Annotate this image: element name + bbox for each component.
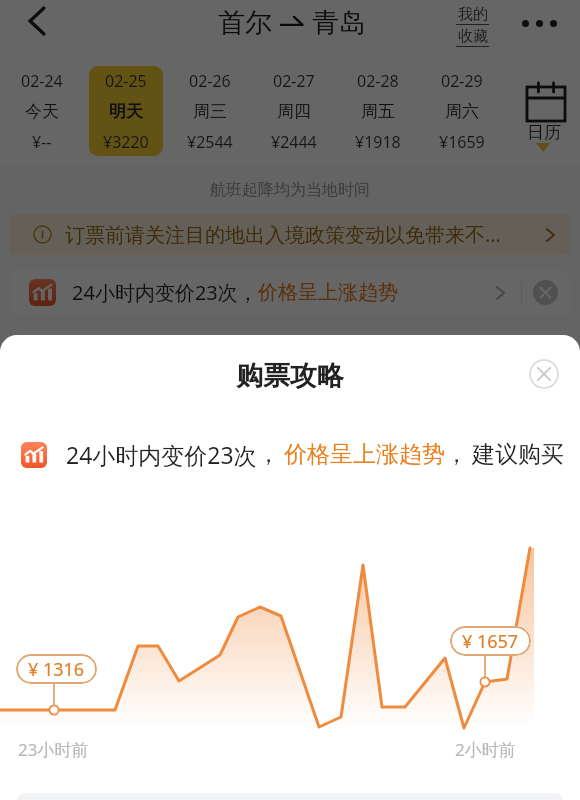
staticText: 周三: [193, 101, 227, 122]
button[interactable]: Dismiss tip: [533, 280, 558, 305]
staticText: ¥1659: [439, 131, 485, 153]
staticText: 购票攻略: [236, 359, 344, 393]
staticText: 收藏: [458, 27, 488, 46]
button[interactable]: 02-27: [257, 66, 331, 156]
staticText: 明天: [109, 101, 143, 122]
staticText: 24小时内变价23次，: [72, 279, 258, 306]
button[interactable]: Back: [13, 0, 61, 42]
button[interactable]: 02-28: [341, 66, 415, 156]
button[interactable]: More options: [516, 2, 562, 44]
staticText: 日历: [527, 122, 561, 143]
staticText: 02-26: [189, 70, 231, 92]
staticText: 2小时前: [455, 738, 516, 761]
staticText: 周五: [361, 101, 395, 122]
staticText: 23小时前: [18, 738, 89, 761]
staticText: 航班起降均为当地时间: [210, 180, 370, 200]
staticText: 订票前请关注目的地出入境政策变动以免带来不…: [65, 221, 540, 248]
staticText: 24小时内变价23次: [66, 439, 257, 470]
staticText: ，: [257, 440, 280, 469]
staticText: ¥--: [32, 131, 52, 153]
button[interactable]: 02-25: [89, 66, 163, 156]
staticText: 我的: [458, 5, 488, 24]
button[interactable]: 日历: [504, 57, 580, 165]
staticText: ¥1918: [355, 131, 401, 153]
staticText: ¥ 1657: [462, 629, 519, 654]
staticText: 02-24: [21, 70, 63, 92]
staticText: 价格呈上涨趋势: [258, 280, 398, 305]
button[interactable]: Close: [529, 359, 559, 389]
staticText: ¥2544: [187, 131, 233, 153]
staticText: 今天: [25, 101, 59, 122]
staticText: ¥3220: [103, 131, 149, 153]
button[interactable]: 24小时内变价23次，: [10, 270, 570, 315]
staticText: 02-25: [105, 70, 147, 92]
staticText: 02-27: [273, 70, 315, 92]
staticText: 02-28: [357, 70, 399, 92]
staticText: ¥2444: [271, 131, 317, 153]
staticText: 周六: [445, 101, 479, 122]
staticText: 首尔: [218, 6, 272, 40]
staticText: 建议购买: [472, 440, 564, 469]
staticText: 02-29: [441, 70, 483, 92]
staticText: ¥ 1316: [28, 657, 85, 682]
staticText: 青岛: [312, 6, 366, 40]
staticText: 价格呈上涨趋势: [284, 440, 445, 469]
staticText: ，: [445, 440, 468, 469]
button[interactable]: 02-29: [425, 66, 499, 156]
staticText: 周四: [277, 101, 311, 122]
button[interactable]: 02-24: [5, 66, 79, 156]
button[interactable]: 订票前请关注目的地出入境政策变动以免带来不…: [10, 214, 570, 255]
button[interactable]: 我的: [456, 5, 489, 47]
button[interactable]: 02-26: [173, 66, 247, 156]
